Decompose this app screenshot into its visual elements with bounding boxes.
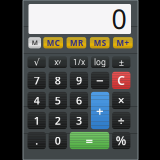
button[interactable]: 7 (27, 72, 46, 89)
button[interactable]: Clear (112, 72, 130, 89)
button[interactable]: Reciprocal (70, 56, 88, 68)
button[interactable]: Equals (70, 132, 109, 149)
staticText: C (117, 72, 125, 88)
button[interactable]: Plus (91, 92, 109, 129)
staticText: MR (70, 37, 83, 48)
button[interactable]: Memory clear (43, 37, 63, 48)
button[interactable]: Memory indicator (28, 37, 41, 48)
staticText: % (116, 133, 127, 148)
button[interactable]: 5 (49, 92, 67, 109)
staticText: . (35, 133, 38, 148)
staticText: 7 (34, 73, 40, 87)
staticText: 2 (55, 113, 61, 128)
staticText: 1 (34, 113, 40, 128)
staticText: ÷ (118, 112, 125, 128)
staticText: MS (94, 37, 106, 48)
button[interactable]: Memory add (113, 37, 133, 48)
button[interactable]: Minus (91, 72, 109, 89)
button[interactable]: Percent (112, 132, 130, 149)
button[interactable]: Divide (112, 112, 130, 129)
staticText: 8 (55, 73, 61, 87)
button[interactable]: Memory recall (67, 37, 86, 48)
button[interactable]: 0 (49, 132, 67, 149)
button[interactable]: 8 (49, 72, 67, 89)
button[interactable]: Plus minus (112, 56, 130, 68)
staticText: 6 (76, 93, 82, 108)
button[interactable]: log (91, 56, 109, 68)
staticText: − (96, 71, 104, 89)
staticText: ± (119, 56, 124, 68)
staticText: √ (34, 57, 40, 67)
staticText: = (85, 132, 93, 149)
button[interactable]: Square root (27, 56, 46, 68)
button[interactable]: Memory store (90, 37, 109, 48)
staticText: M+ (116, 37, 129, 48)
staticText: 5 (55, 93, 61, 108)
button[interactable]: 1 (27, 112, 46, 129)
staticText: M (32, 38, 38, 47)
staticText: log (94, 57, 106, 67)
staticText: 0 (55, 133, 61, 148)
staticText: + (96, 102, 104, 119)
staticText: 3 (76, 113, 82, 128)
staticText: × (118, 92, 125, 108)
button[interactable]: 4 (27, 92, 46, 109)
staticText: xʸ (54, 57, 61, 67)
staticText: MC (47, 37, 60, 48)
button[interactable]: . (27, 132, 46, 149)
button[interactable]: 6 (70, 92, 88, 109)
staticText: 4 (34, 93, 40, 108)
button[interactable]: 2 (49, 112, 67, 129)
staticText: 1/x (73, 57, 85, 67)
button[interactable]: Power (49, 56, 67, 68)
button[interactable]: 3 (70, 112, 88, 129)
button[interactable]: Multiply (112, 92, 130, 109)
button[interactable]: 9 (70, 72, 88, 89)
staticText: 0 (111, 1, 126, 37)
staticText: 9 (76, 73, 82, 87)
